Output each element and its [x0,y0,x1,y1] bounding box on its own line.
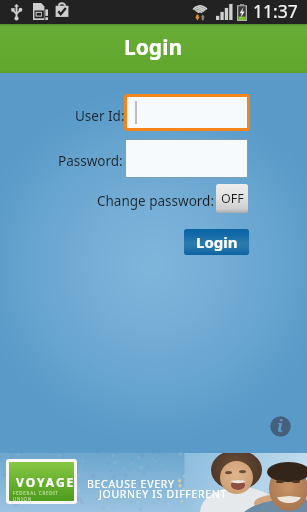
button[interactable]: Info [265,411,296,442]
button[interactable]: VOYAGE [0,453,307,512]
button[interactable] [127,97,247,128]
staticText: Login [196,232,238,252]
staticText: 11:37 [253,0,298,23]
staticText: FEDERAL CREDIT UNION [13,490,78,502]
button[interactable]: Login [184,229,249,255]
staticText: Password: [58,152,123,170]
staticText: i [277,414,284,437]
staticText: JOURNEY IS DIFFERENT [99,487,227,501]
staticText: User Id: [75,107,125,125]
staticText: BECAUSE EVERY [87,477,175,491]
button[interactable]: OFF [216,184,248,213]
staticText: VOYAGE [16,474,76,490]
staticText: Change password: [97,192,215,210]
staticText: OFF [221,190,244,207]
staticText: Login [124,33,183,62]
